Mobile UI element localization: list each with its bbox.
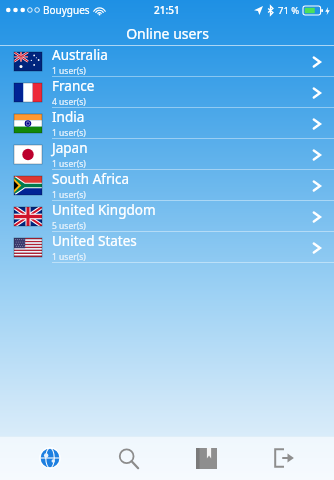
staticText: Japan — [52, 139, 88, 157]
staticText: United States — [52, 232, 137, 250]
button[interactable]: Library — [178, 436, 234, 480]
staticText: India — [52, 108, 85, 126]
button[interactable]: South Africa — [0, 170, 334, 201]
staticText: France — [52, 77, 95, 95]
staticText: 1 user(s) — [52, 158, 86, 170]
button[interactable]: Online users — [22, 436, 78, 480]
staticText: 5 user(s) — [52, 220, 86, 232]
button[interactable]: United States — [0, 232, 334, 263]
staticText: 1 user(s) — [52, 127, 86, 139]
staticText: Online users — [126, 24, 209, 43]
button[interactable]: Search — [100, 436, 156, 480]
staticText: Australia — [52, 46, 108, 64]
staticText: 71 % — [278, 4, 300, 17]
staticText: South Africa — [52, 170, 130, 188]
button[interactable]: France — [0, 77, 334, 108]
button[interactable]: Japan — [0, 139, 334, 170]
staticText: 1 user(s) — [52, 189, 86, 201]
staticText: 1 user(s) — [52, 65, 86, 77]
staticText: 21:51 — [154, 3, 180, 17]
button[interactable]: Log out — [256, 436, 312, 480]
button[interactable]: Australia — [0, 46, 334, 77]
button[interactable]: United Kingdom — [0, 201, 334, 232]
staticText: Bouygues — [43, 3, 90, 17]
staticText: United Kingdom — [52, 201, 156, 219]
staticText: 4 user(s) — [52, 96, 86, 108]
staticText: 1 user(s) — [52, 251, 86, 263]
button[interactable]: India — [0, 108, 334, 139]
